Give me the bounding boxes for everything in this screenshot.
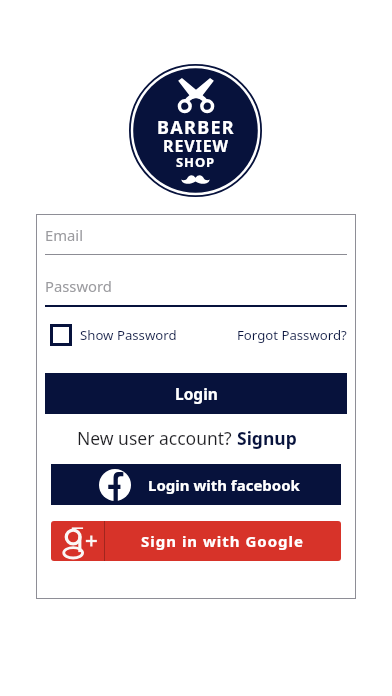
staticText: Sign in with Google (141, 531, 305, 551)
staticText: Login with facebook (148, 475, 300, 495)
staticText: SHOP (176, 153, 216, 171)
other: Google (55, 521, 101, 561)
staticText: New user account? (77, 426, 237, 450)
button[interactable]: Google (51, 521, 341, 561)
staticText: Email (45, 225, 83, 245)
other: Facebook (99, 469, 131, 501)
staticText: REVIEW (163, 135, 229, 157)
button[interactable]: Signup (237, 426, 297, 450)
button[interactable]: Facebook (51, 464, 341, 505)
staticText: BARBER (157, 115, 235, 140)
button[interactable]: Forgot Password? (237, 326, 347, 344)
staticText: Login (175, 383, 218, 404)
button[interactable]: Login (45, 373, 347, 414)
button[interactable]: Show Password (50, 324, 177, 346)
staticText: Show Password (80, 326, 177, 344)
staticText: Password (45, 276, 112, 296)
